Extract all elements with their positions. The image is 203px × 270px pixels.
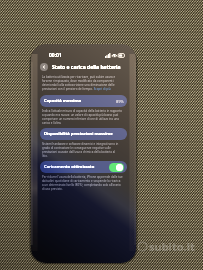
staticText: Stato e carica della batteria [52, 64, 121, 71]
staticText: farsene rimpiazzata, dove modificato da … [42, 79, 114, 83]
staticText: Indica l'attuale misura di capacità dell… [42, 109, 122, 113]
staticText: prestazioni con il pensiero del tempo. [42, 87, 93, 91]
staticText: 89% [116, 99, 124, 104]
staticText: a un determinato livello (80%), completa… [42, 183, 121, 187]
staticText: subito.it [149, 239, 195, 254]
staticText: Disponibilità prestazioni massime [44, 131, 113, 137]
staticText: comportare un numero inferiore di ore di… [42, 117, 119, 121]
staticText: abitudini quotidiane di caricamento e so… [42, 179, 121, 183]
staticText: La batteria utilizzata per ricaricare, p… [42, 75, 116, 79]
staticText: Sistemi hardware e software dinamici e i… [42, 142, 119, 146]
button[interactable]: Capacità massima [40, 95, 127, 107]
staticText: 00:01 [49, 52, 62, 59]
button[interactable]: Indietro [40, 63, 48, 71]
staticText: carica e l'altra. [42, 121, 62, 125]
staticText: prestazioni causate dall'usura chimica d… [42, 150, 116, 154]
staticText: di uso previsto. [42, 187, 63, 191]
staticText: Scopri di più [93, 87, 111, 91]
staticText: Capacità massima [44, 98, 81, 104]
button[interactable]: Caricamento ottimizzato [109, 163, 124, 172]
staticText: grado di contrastare le conseguenze nega… [42, 146, 111, 150]
staticText: Per ridurre l'usura della batteria, iPho… [42, 175, 123, 179]
button[interactable]: Disponibilità prestazioni massime [40, 128, 127, 140]
staticText: Caricamento ottimizzato [44, 164, 95, 170]
staticText: a quando era nuova: un valore di capacit… [42, 113, 119, 117]
staticText: litio. [42, 154, 48, 158]
staticText: deteriorabili alla sottoscrizione una di… [42, 83, 115, 87]
button[interactable]: Caricamento ottimizzato [40, 161, 127, 173]
